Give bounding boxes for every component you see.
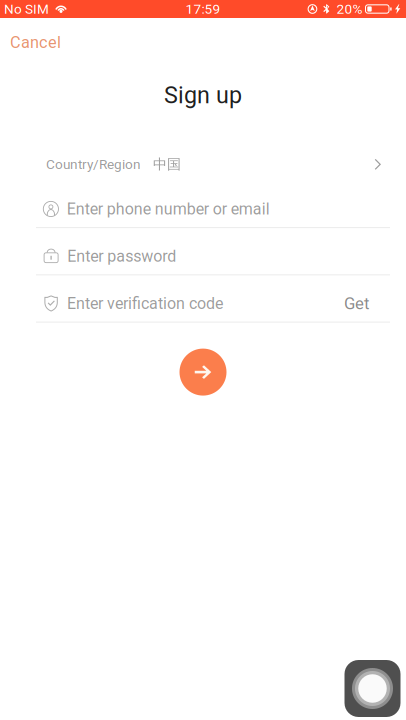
button[interactable]: Cancel xyxy=(0,25,75,60)
button[interactable]: Get xyxy=(332,282,390,325)
staticText: Enter phone number or email xyxy=(67,200,270,218)
staticText: Sign up xyxy=(164,81,242,109)
staticText: 20% xyxy=(336,1,362,17)
staticText: Get xyxy=(344,294,369,313)
button[interactable]: AssistiveTouch xyxy=(344,660,400,717)
button[interactable]: Country/Region xyxy=(36,140,390,181)
staticText: Enter verification code xyxy=(67,294,223,313)
staticText: Enter password xyxy=(67,247,176,266)
staticText: Country/Region xyxy=(46,156,141,172)
staticText: No SIM xyxy=(4,1,49,17)
staticText: 中国 xyxy=(153,155,181,173)
button[interactable]: Continue xyxy=(179,349,226,396)
staticText: 17:59 xyxy=(185,1,220,17)
staticText: Cancel xyxy=(10,33,61,52)
